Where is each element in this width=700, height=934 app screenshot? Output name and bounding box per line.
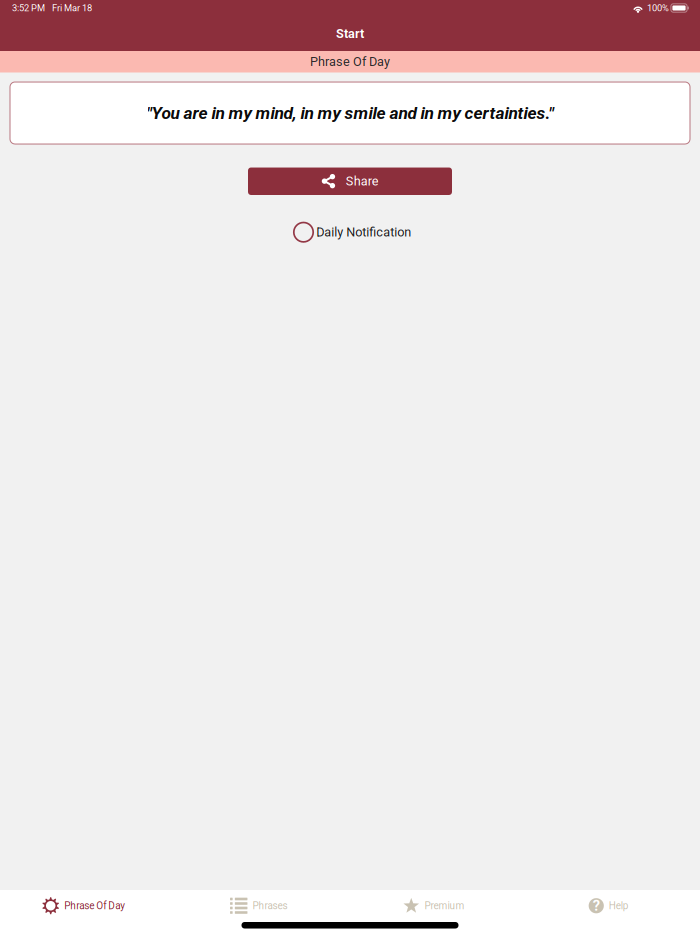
staticText: ? bbox=[593, 897, 600, 914]
staticText: Start bbox=[336, 26, 364, 41]
staticText: 3:52 PM bbox=[12, 2, 45, 13]
button[interactable]: Daily Notification bbox=[289, 222, 411, 242]
button[interactable]: ? bbox=[525, 890, 700, 921]
staticText: Premium bbox=[424, 900, 464, 912]
staticText: "You are in my mind, in my smile and in … bbox=[146, 103, 553, 123]
button[interactable]: Phrases bbox=[175, 890, 350, 921]
staticText: Daily Notification bbox=[316, 225, 411, 240]
button[interactable]: Premium bbox=[350, 890, 525, 921]
staticText: Phrase Of Day bbox=[64, 900, 125, 912]
staticText: Phrase Of Day bbox=[310, 54, 390, 69]
button[interactable]: Share bbox=[248, 167, 452, 195]
staticText: Help bbox=[609, 900, 629, 912]
staticText: Fri Mar 18 bbox=[52, 2, 92, 13]
button[interactable]: Phrase Of Day bbox=[0, 890, 175, 921]
staticText: Share bbox=[346, 174, 379, 189]
staticText: Phrases bbox=[252, 900, 287, 912]
staticText: 100% bbox=[647, 2, 669, 13]
